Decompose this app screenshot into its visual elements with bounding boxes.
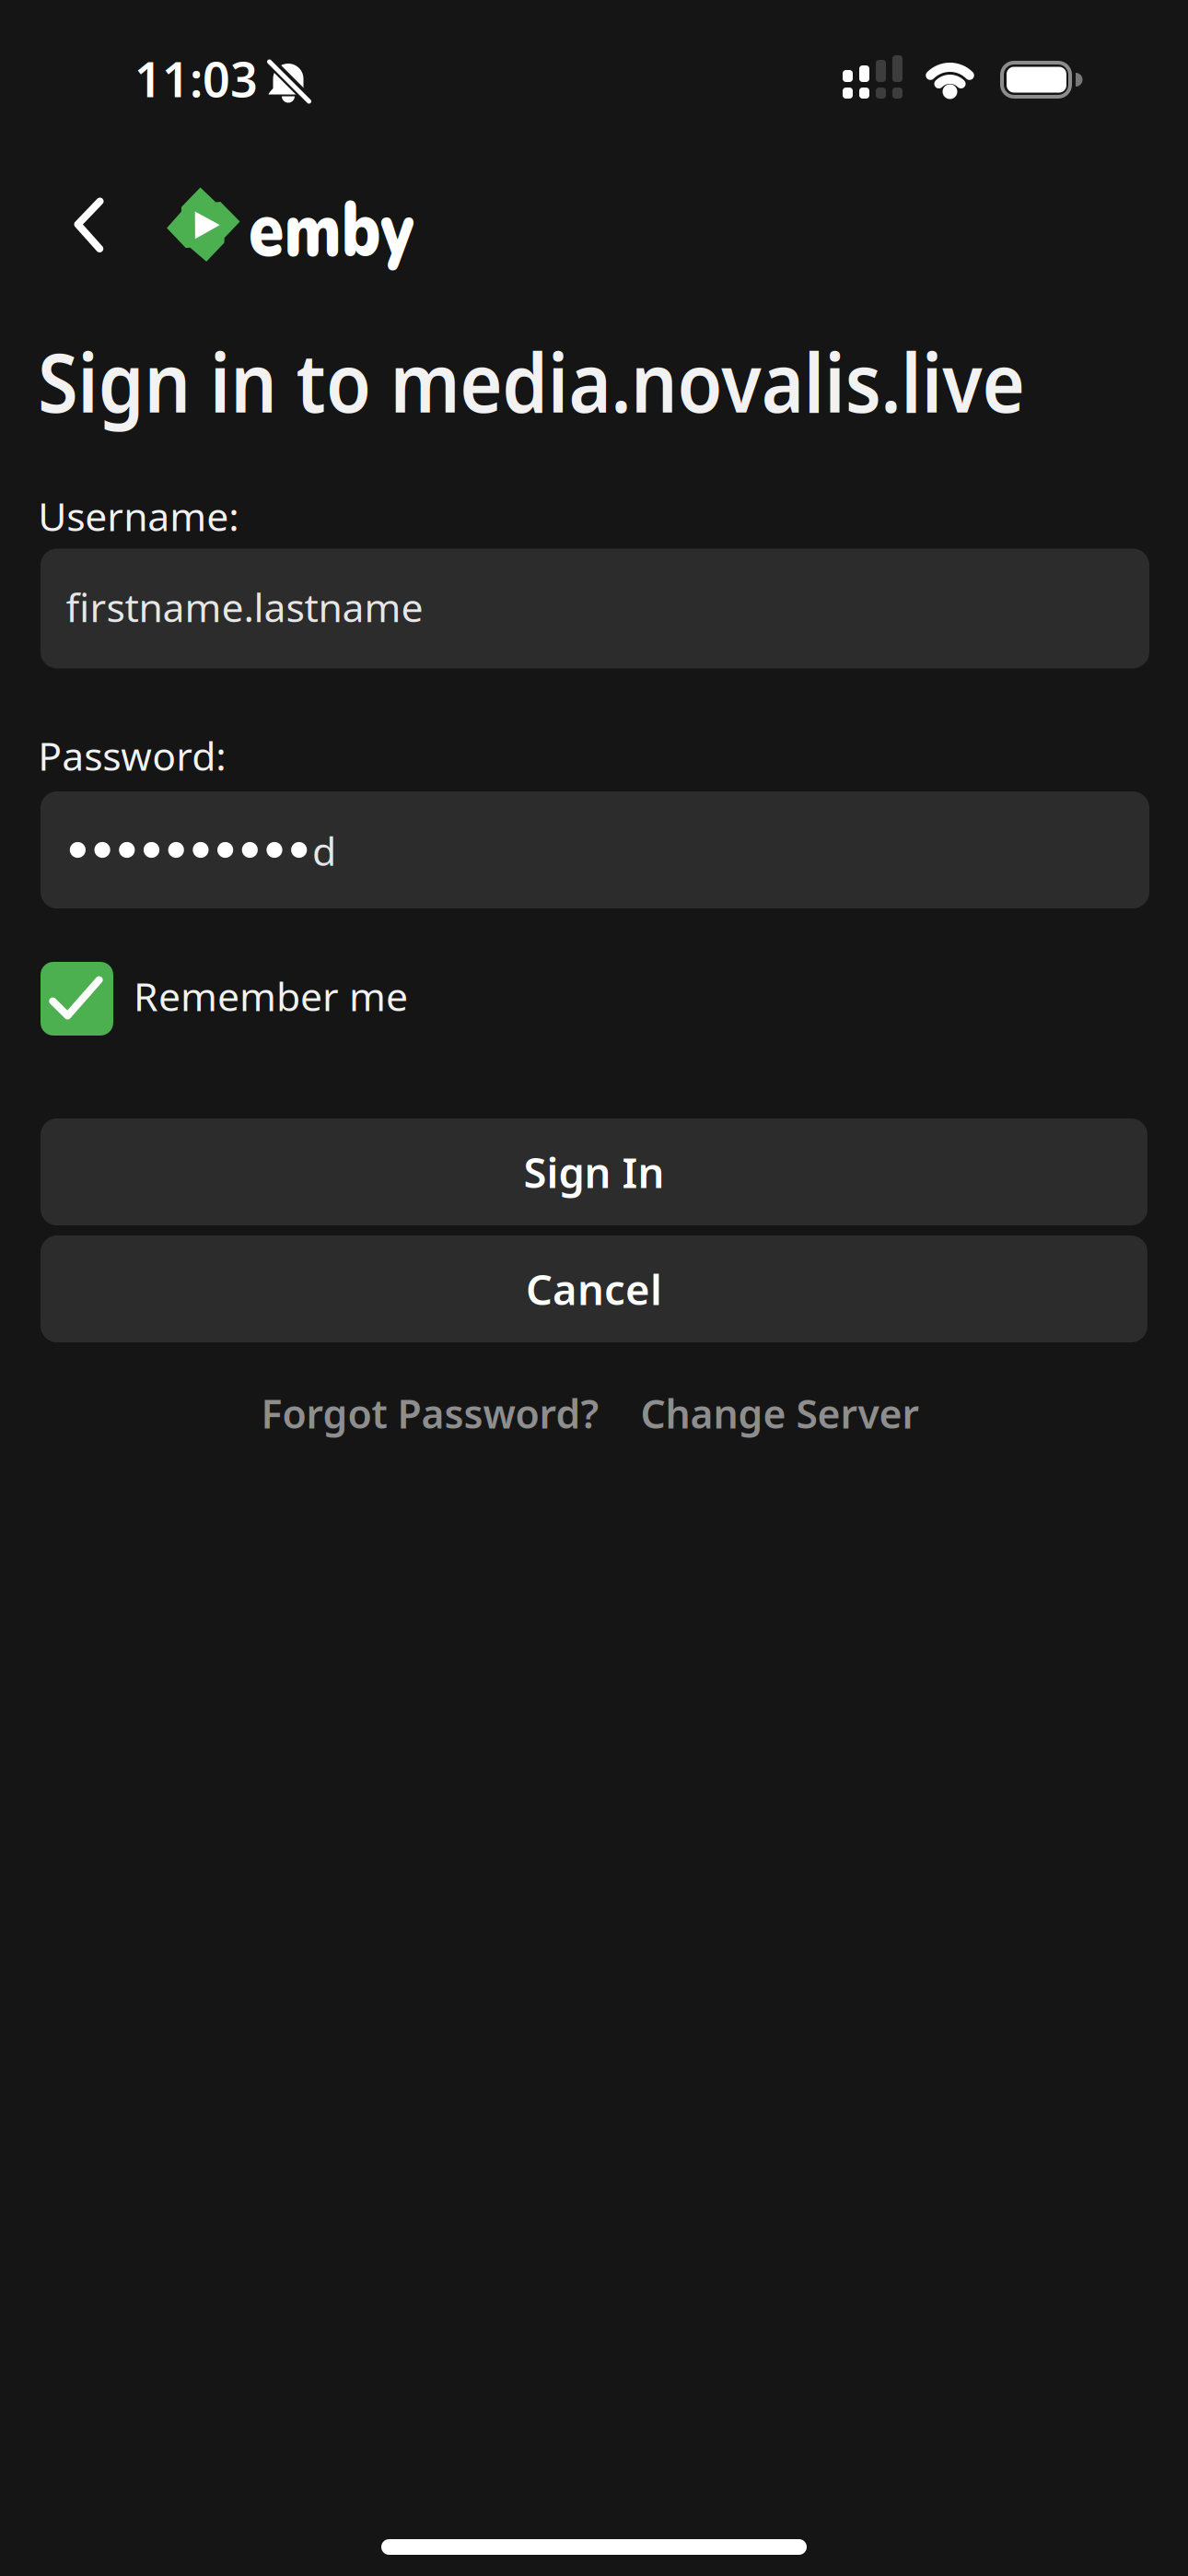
button[interactable]: Change Server [641,1387,920,1439]
staticText: Sign in to media.novalis.live [38,327,1132,435]
button[interactable]: Password [41,791,1149,908]
staticText: Remember me [134,970,408,1022]
button[interactable]: Username [41,549,1149,668]
button[interactable]: Back [70,189,110,259]
staticText: Username: [38,490,239,542]
button[interactable]: Sign In [41,1118,1147,1225]
staticText: Change Server [641,1387,920,1439]
staticText: firstname.lastname [66,581,423,633]
staticText: Sign In [524,1144,664,1200]
staticText: emby [249,177,450,283]
button[interactable]: Remember me [41,962,408,1036]
staticText: Forgot Password? [261,1387,599,1439]
button[interactable]: Cancel [41,1235,1147,1342]
staticText: 11:03 [134,47,258,110]
staticText: d [312,824,336,877]
button[interactable]: Forgot Password? [261,1387,599,1439]
staticText: Cancel [526,1261,662,1317]
staticText: Password: [38,729,226,781]
